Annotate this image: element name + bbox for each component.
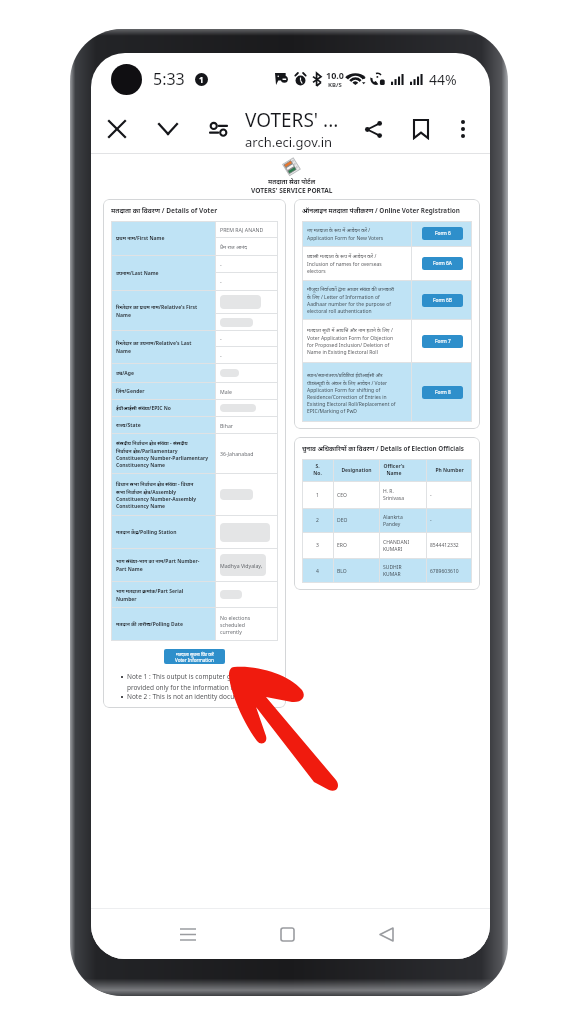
staticText: लिंग/Gender <box>116 388 145 395</box>
staticText: PREM RAJ ANAND <box>220 226 264 233</box>
button[interactable]: Form 6 <box>422 227 463 240</box>
staticText: मतदाता सूची में आपत्ति और नाम हटाने के ल… <box>307 327 394 355</box>
staticText: ऑनलाइन मतदाता पंजीकरण / Online Voter Reg… <box>302 206 460 215</box>
staticText: CEO <box>337 492 347 499</box>
staticText: 36-Jahanabad <box>220 450 254 457</box>
staticText: मतदाता सेवा पोर्टल <box>268 177 316 186</box>
button[interactable]: Expand <box>152 113 184 145</box>
staticText: VOTERS' SERVICE PORTAL <box>251 186 333 195</box>
staticText: Male <box>220 388 232 395</box>
staticText: 5:33 <box>153 68 185 90</box>
button[interactable]: Back <box>366 914 406 954</box>
staticText: - <box>220 352 222 359</box>
staticText: रिश्तेदार का प्रथम नाम/Relative's First … <box>116 304 198 318</box>
staticText: ईपीआईसी संख्या/EPIC No <box>116 405 171 412</box>
button[interactable]: Recents <box>168 914 208 954</box>
staticText: CHANDANI KUMARI <box>383 539 410 553</box>
staticText: No elections scheduled currently <box>220 614 251 635</box>
staticText: Form 7 <box>435 338 451 345</box>
staticText: DEO <box>337 517 348 524</box>
staticText: मतदाता का विवरण / Details of Voter <box>111 206 218 215</box>
staticText: मौजूदा निर्वाचकों द्वारा आधार संख्या की … <box>307 286 395 314</box>
staticText: Designation <box>341 467 372 474</box>
staticText: - <box>220 335 222 342</box>
staticText: 10.0 <box>326 69 344 81</box>
staticText: 44% <box>429 70 457 89</box>
staticText: Form 6A <box>433 260 452 267</box>
staticText: Bihar <box>220 422 233 429</box>
button[interactable]: More options <box>448 114 478 144</box>
staticText: Note 2 : This is not an identity documen… <box>127 692 252 701</box>
staticText: Form 6B <box>433 297 452 304</box>
staticText: रिश्तेदार का उपनाम/Relative's Last Name <box>116 340 192 354</box>
button[interactable]: Page settings <box>201 112 235 146</box>
staticText: संसदीय निर्वाचन क्षेत्र संख्या - संसदीय … <box>116 440 209 468</box>
button[interactable]: Share <box>356 112 390 146</box>
staticText: 4 <box>316 568 319 575</box>
staticText: प्रेम राज आनंद <box>220 243 248 250</box>
staticText: KB/S <box>328 81 342 89</box>
staticText: Officer's Name <box>383 463 405 477</box>
staticText: BLO <box>337 568 347 575</box>
staticText: भाग संख्या-भाग का नाम/Part Number- Part … <box>116 558 200 572</box>
staticText: भाग मतदाता क्रमांक/Part Serial Number <box>116 588 184 602</box>
staticText: चुनाव अधिकारियों का विवरण / Details of E… <box>302 444 464 453</box>
staticText: Alankrta Pandey <box>383 514 403 528</box>
staticText: - <box>430 492 432 499</box>
staticText: 6789603610 <box>430 568 459 575</box>
button[interactable]: Form 6A <box>422 257 463 270</box>
button[interactable]: मतदाता सूचना प्रिंट करें <box>164 649 225 664</box>
staticText: 2 <box>316 517 319 524</box>
button[interactable]: Close <box>101 113 133 145</box>
staticText: arch.eci.gov.in <box>245 133 333 151</box>
button[interactable]: Home <box>267 914 307 954</box>
staticText: - <box>220 261 222 268</box>
button[interactable]: Bookmark <box>404 112 438 146</box>
staticText: SUDHIR KUMAR <box>383 564 402 578</box>
button[interactable]: Form 7 <box>422 335 463 348</box>
staticText: प्रवासी मतदाता के रूप में आवेदन करें / I… <box>307 253 382 274</box>
staticText: स्थान/स्थानांतरण/प्रविष्टियां ईपीआईसी और… <box>307 372 396 414</box>
staticText: 1 <box>316 492 319 499</box>
staticText: VOTERS' ... <box>245 107 339 133</box>
staticText: मतदान की तारीख/Polling Date <box>116 621 183 628</box>
staticText: राज्य/State <box>116 422 141 429</box>
staticText: प्रथम नाम/First Name <box>116 235 165 242</box>
staticText: Ph Number <box>435 467 464 474</box>
staticText: S. No. <box>313 463 322 477</box>
staticText: Note 1 : This output is computer generat… <box>127 672 278 692</box>
staticText: मतदाता सूचना प्रिंट करें <box>176 651 214 657</box>
staticText: Form 8 <box>435 389 451 396</box>
staticText: 8544412332 <box>430 542 459 549</box>
button[interactable]: Form 8 <box>422 386 463 399</box>
staticText: H. R. Srinivasa <box>383 488 405 502</box>
button[interactable]: Form 6B <box>422 294 463 307</box>
staticText: Voter Information <box>175 657 214 663</box>
staticText: Form 6 <box>435 230 451 237</box>
staticText: नए मतदाता के रूप में आवेदन करें / Applic… <box>307 227 384 241</box>
staticText: उपनाम/Last Name <box>116 270 159 277</box>
staticText: उम्र/Age <box>116 370 134 377</box>
staticText: - <box>430 517 432 524</box>
staticText: - <box>220 278 222 285</box>
staticText: Madhya Vidyalay, <box>220 562 263 569</box>
staticText: 1 <box>199 74 204 85</box>
staticText: ERO <box>337 542 347 549</box>
staticText: विधान सभा निर्वाचन क्षेत्र संख्या - विधा… <box>116 481 197 509</box>
staticText: 3 <box>316 542 319 549</box>
staticText: मतदान केंद्र/Polling Station <box>116 529 177 536</box>
